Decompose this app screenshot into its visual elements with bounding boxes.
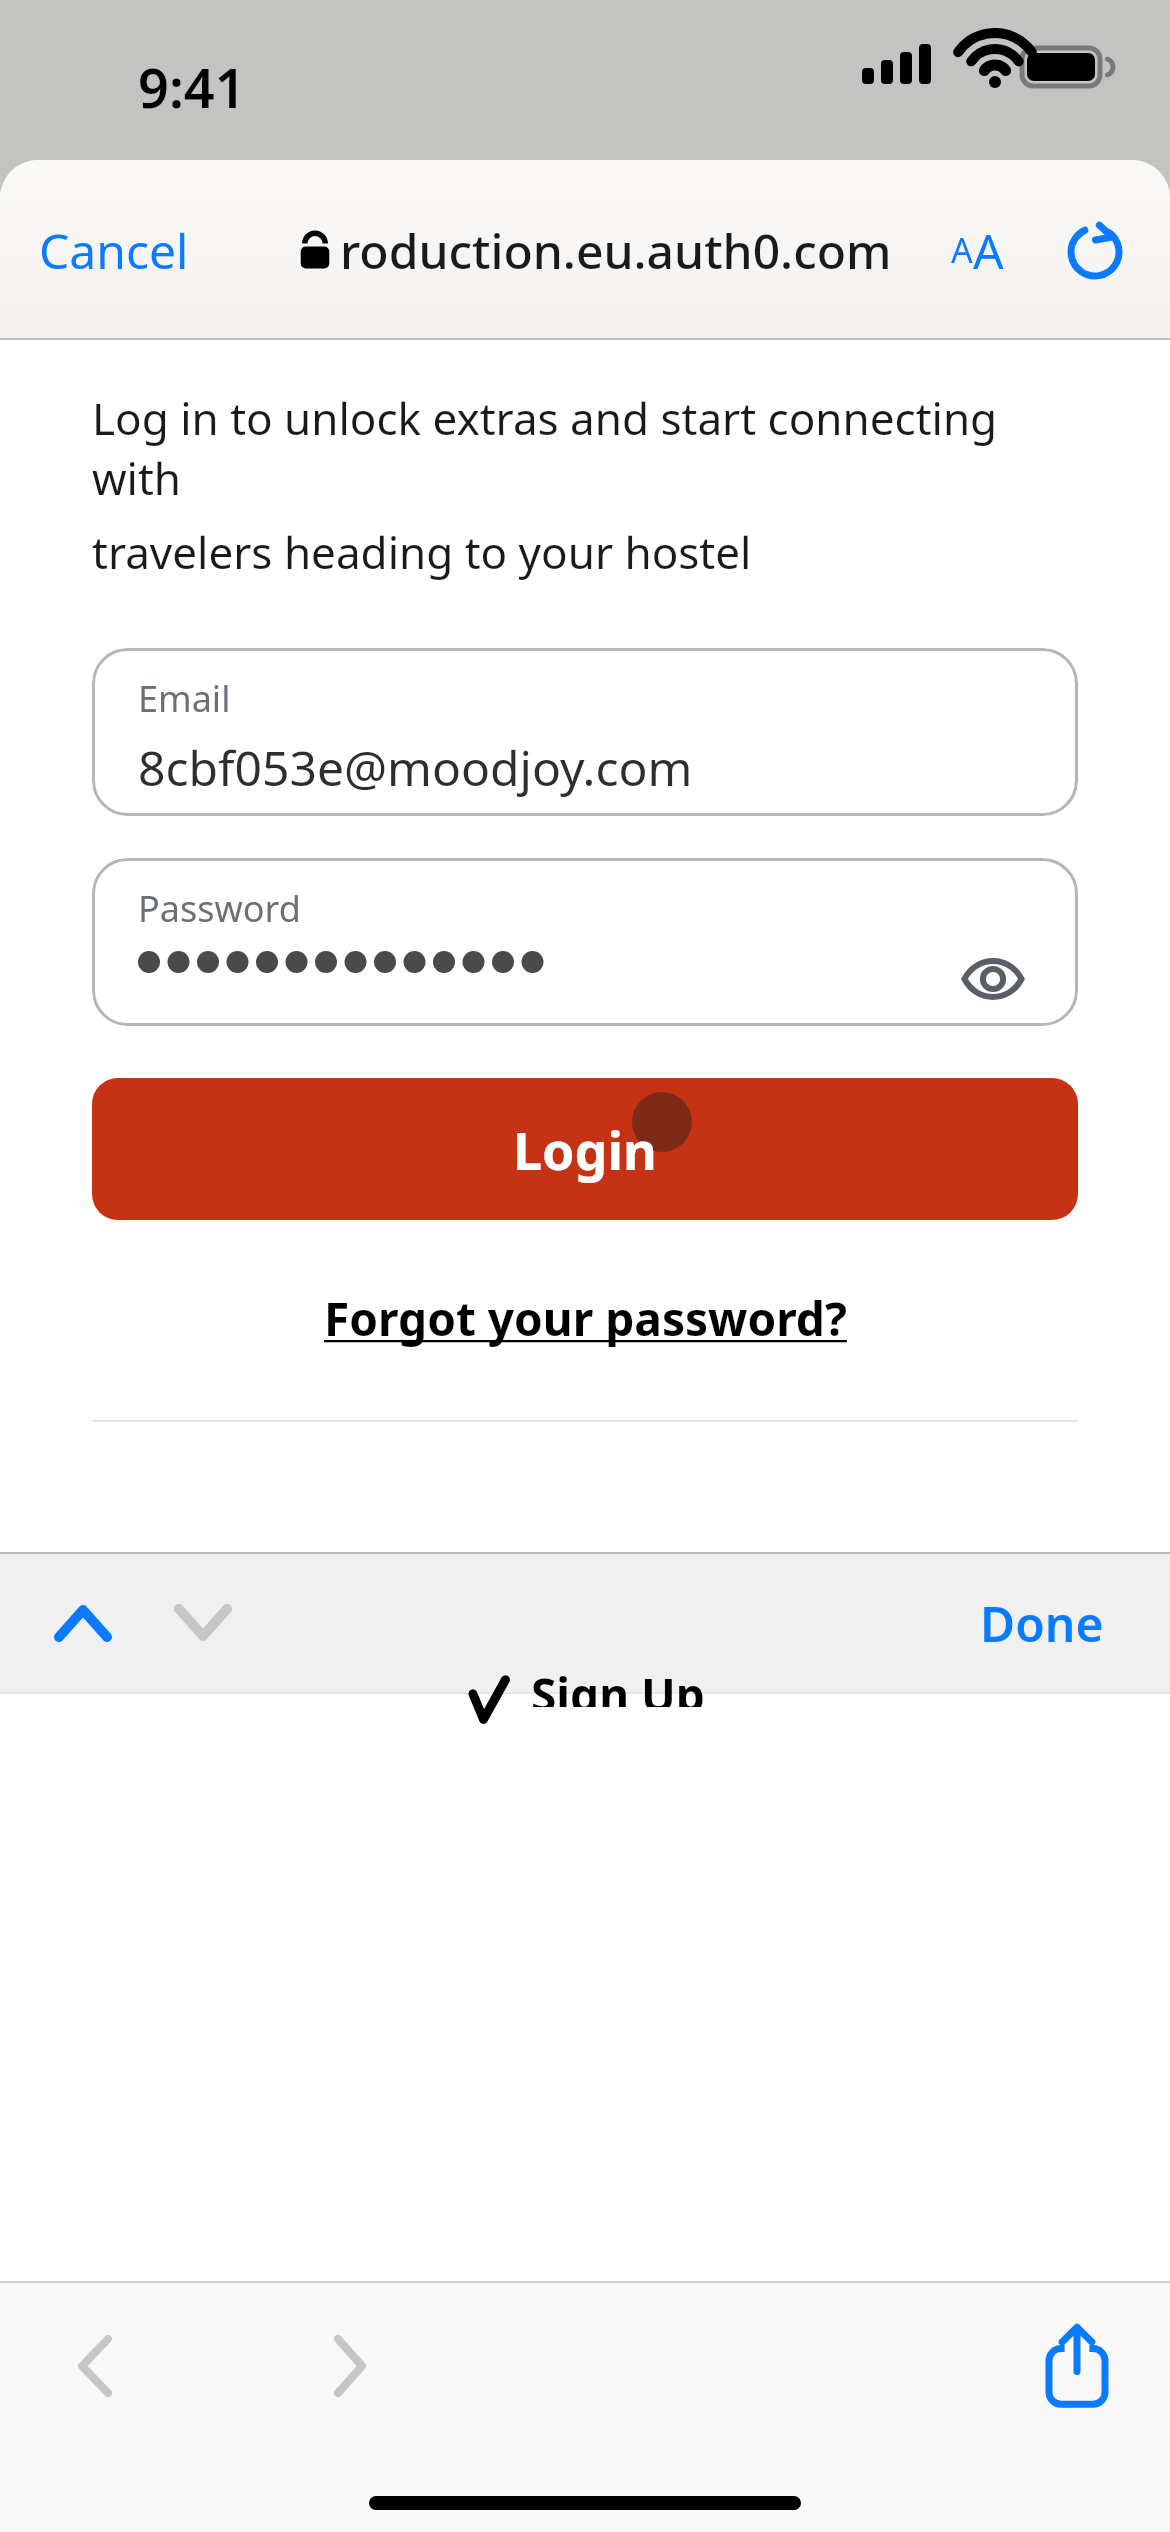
button[interactable]: Forgot your password? — [0, 1278, 1170, 1358]
button[interactable]: Sign Up — [0, 1693, 1170, 1737]
button[interactable]: Show password — [938, 924, 1048, 1034]
staticText: A — [951, 227, 973, 273]
staticText: Sign Up — [531, 1663, 705, 1707]
button[interactable]: Previous field — [28, 1553, 138, 1693]
staticText: A — [973, 218, 1004, 283]
button[interactable]: Back — [34, 2306, 154, 2426]
button[interactable]: Reload page — [1040, 180, 1150, 320]
staticText: Done — [980, 1591, 1104, 1656]
staticText: travelers heading to your hostel — [92, 522, 752, 582]
button[interactable]: Login — [92, 1078, 1078, 1220]
staticText: Cancel — [39, 218, 189, 283]
staticText: Login — [513, 1114, 657, 1185]
button[interactable]: Next field — [148, 1553, 258, 1693]
button[interactable]: Done — [942, 1553, 1142, 1693]
staticText: Email — [138, 674, 231, 723]
staticText: 8cbf053e@moodjoy.com — [138, 735, 693, 800]
button[interactable]: Share — [1012, 2300, 1142, 2430]
staticText: Password — [138, 884, 301, 933]
button[interactable]: Text size options — [922, 180, 1032, 320]
staticText: Forgot your password? — [324, 1287, 847, 1350]
staticText: roduction.eu.auth0.com — [340, 218, 892, 283]
staticText: 9:41 — [138, 50, 246, 124]
staticText: Log in to unlock extras and start connec… — [92, 388, 1090, 508]
button[interactable]: roduction.eu.auth0.com — [298, 180, 892, 320]
button[interactable]: Password — [92, 858, 1078, 1026]
button[interactable]: Forward — [290, 2306, 410, 2426]
button[interactable]: Email — [92, 648, 1078, 816]
button[interactable]: Cancel — [24, 180, 204, 320]
